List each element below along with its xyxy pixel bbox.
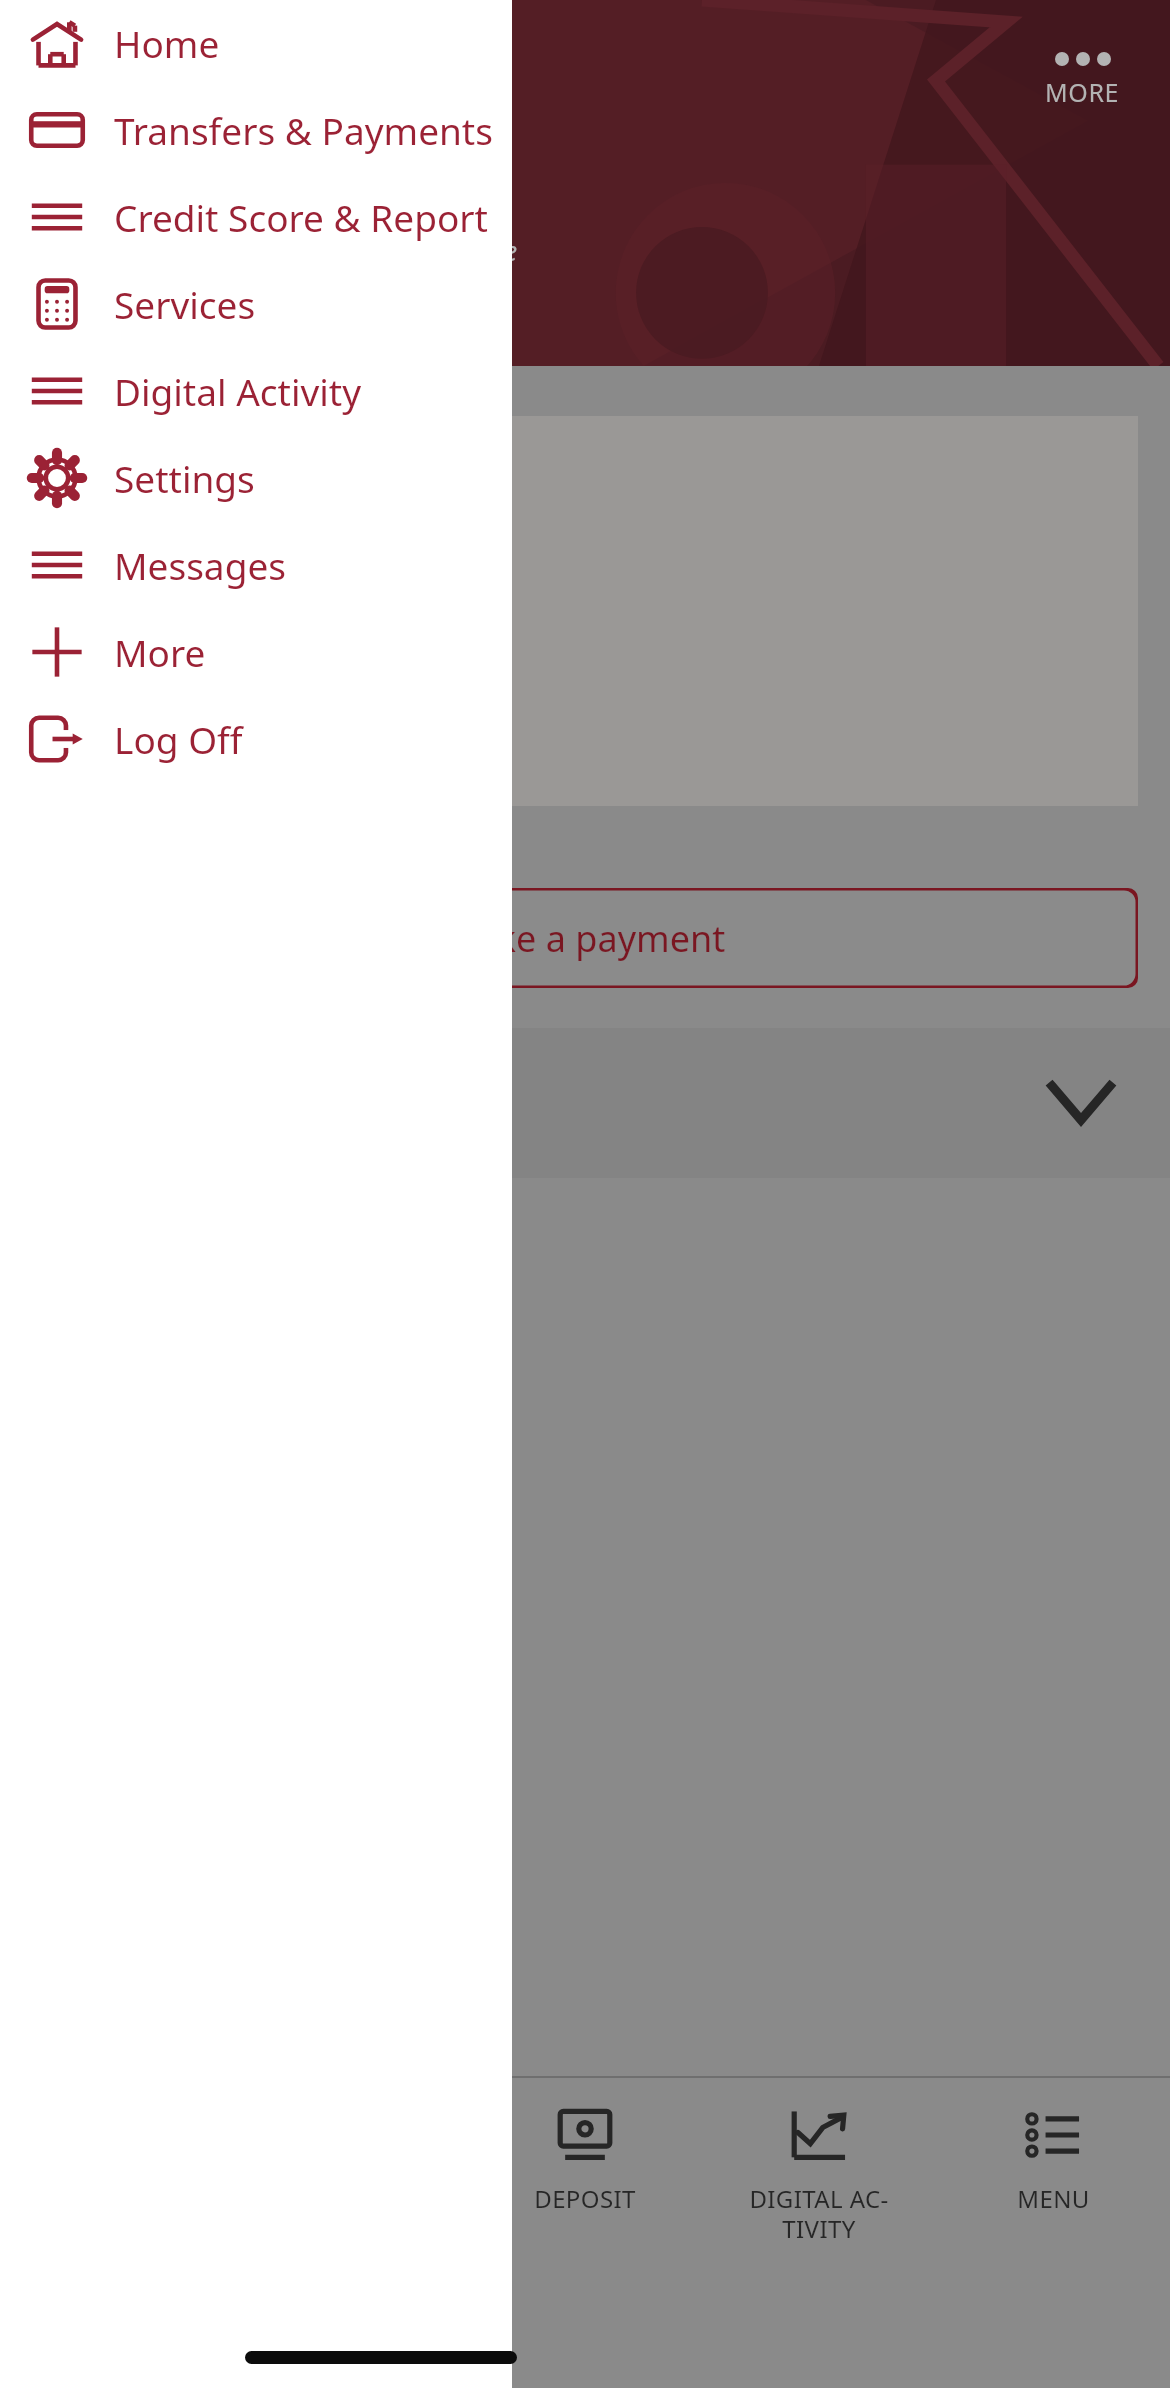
button[interactable]: Credit Score & Report xyxy=(0,173,512,260)
button[interactable]: Home xyxy=(0,0,512,86)
staticText: DEPOSIT xyxy=(534,2182,636,2215)
button[interactable]: Chat xyxy=(992,2090,1112,2210)
staticText: For you and family in our credit app xyxy=(72,754,334,806)
button[interactable]: Make a payment xyxy=(32,888,1138,988)
staticText: More xyxy=(114,627,206,677)
staticText: Settings xyxy=(114,453,255,503)
staticText: Get a complementary credit subscription xyxy=(72,516,421,732)
staticText: Backed by the full faith and credit of t… xyxy=(40,232,518,269)
staticText: Home xyxy=(114,18,220,68)
button[interactable]: Digital Activity xyxy=(0,347,512,434)
button[interactable]: Transfers & Payments xyxy=(0,86,512,173)
button[interactable]: Settings xyxy=(0,434,512,521)
staticText: DIGITAL AC- TIVITY xyxy=(749,2182,889,2245)
staticText: MENU xyxy=(1017,2182,1090,2215)
button[interactable]: More xyxy=(0,608,512,695)
button[interactable]: MENU xyxy=(936,2078,1170,2314)
button[interactable]: Services xyxy=(0,260,512,347)
staticText: Digital Activity xyxy=(114,366,362,416)
staticText: Messages xyxy=(114,540,286,590)
staticText: Log Off xyxy=(114,714,243,764)
staticText: Credit Score & Report xyxy=(114,192,488,242)
staticText: Make a payment xyxy=(444,914,726,963)
button[interactable]: Expand xyxy=(0,1028,1170,1178)
button[interactable]: Messages xyxy=(0,521,512,608)
staticText: Transfers & Payments xyxy=(114,105,493,155)
staticText: City National Bank xyxy=(40,140,368,192)
button[interactable]: DIGITAL AC- TIVITY xyxy=(702,2078,936,2314)
button[interactable]: DEPOSIT xyxy=(468,2078,702,2314)
button[interactable]: Get a complementary credit subscription xyxy=(32,416,1138,806)
staticText: MORE xyxy=(1045,75,1120,109)
button[interactable]: Log Off xyxy=(0,695,512,782)
button[interactable]: More xyxy=(1031,44,1134,115)
staticText: Services xyxy=(114,279,256,329)
